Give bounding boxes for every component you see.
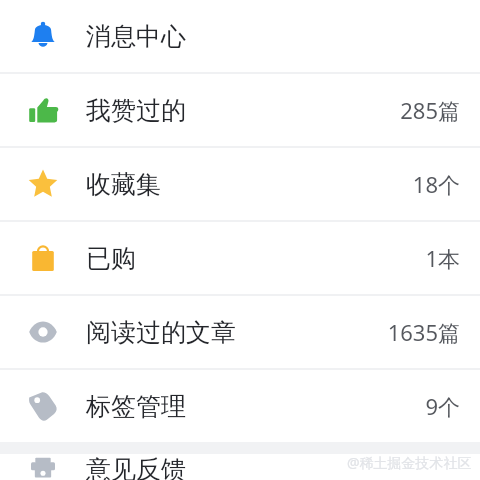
- staticText: 1本: [425, 243, 460, 273]
- button[interactable]: 已购: [0, 222, 480, 294]
- button[interactable]: 收藏集: [0, 148, 480, 220]
- staticText: 阅读过的文章: [86, 317, 236, 348]
- staticText: @稀土掘金技术社区: [347, 453, 472, 472]
- staticText: 我赞过的: [86, 95, 186, 126]
- staticText: 意见反馈: [86, 454, 186, 480]
- staticText: 消息中心: [86, 21, 186, 52]
- staticText: 收藏集: [86, 169, 161, 200]
- staticText: 9个: [425, 391, 460, 421]
- button[interactable]: 消息中心: [0, 0, 480, 72]
- staticText: 标签管理: [86, 391, 186, 422]
- button[interactable]: 阅读过的文章: [0, 296, 480, 368]
- staticText: 285篇: [400, 95, 460, 125]
- button[interactable]: 我赞过的: [0, 74, 480, 146]
- staticText: 18个: [412, 169, 460, 199]
- button[interactable]: 标签管理: [0, 370, 480, 442]
- staticText: 1635篇: [387, 317, 460, 347]
- staticText: 已购: [86, 243, 136, 274]
- button[interactable]: 意见反馈: [0, 454, 480, 480]
